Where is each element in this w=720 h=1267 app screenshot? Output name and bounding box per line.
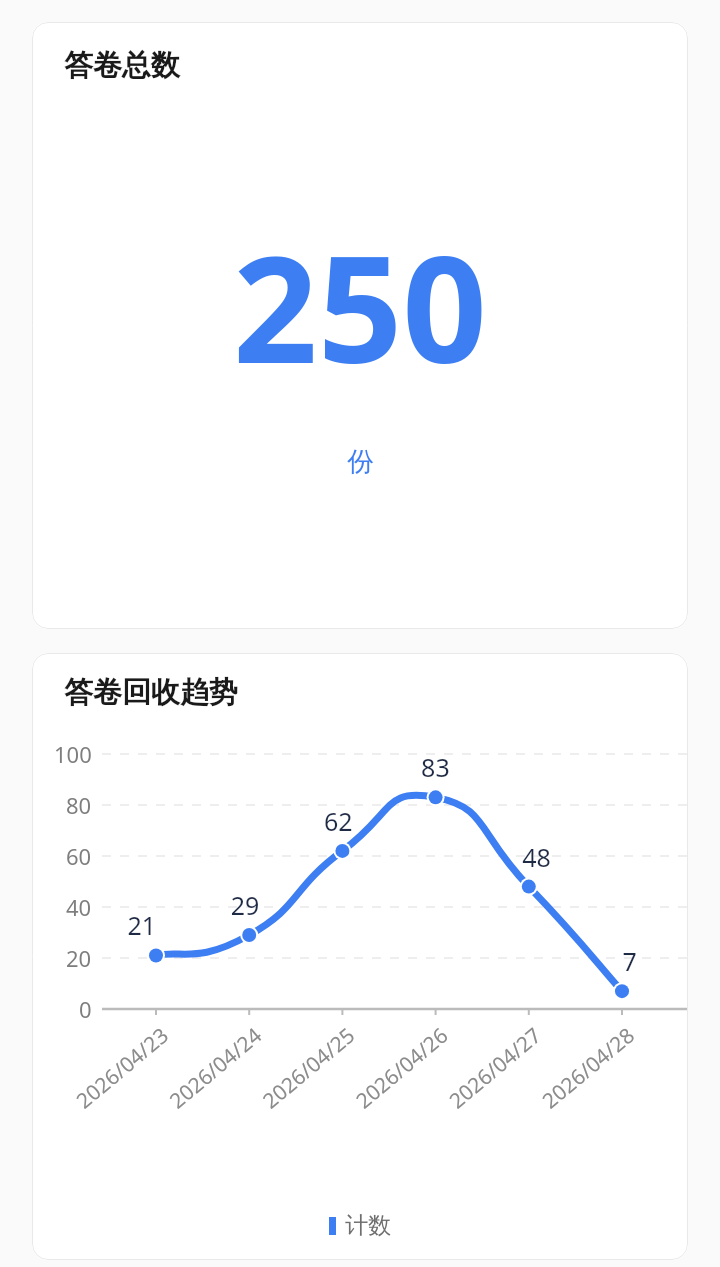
- staticText: 答卷回收趋势: [64, 674, 238, 711]
- button[interactable]: 答卷总数: [32, 22, 688, 629]
- other: 答卷回收趋势折线图: [32, 731, 688, 1231]
- staticText: 计数: [345, 1211, 391, 1240]
- staticText: 份: [347, 445, 374, 479]
- button[interactable]: 答卷回收趋势: [32, 653, 688, 1260]
- staticText: 250: [233, 205, 487, 407]
- staticText: 答卷总数: [64, 47, 180, 84]
- button[interactable]: 计数: [329, 1211, 391, 1240]
